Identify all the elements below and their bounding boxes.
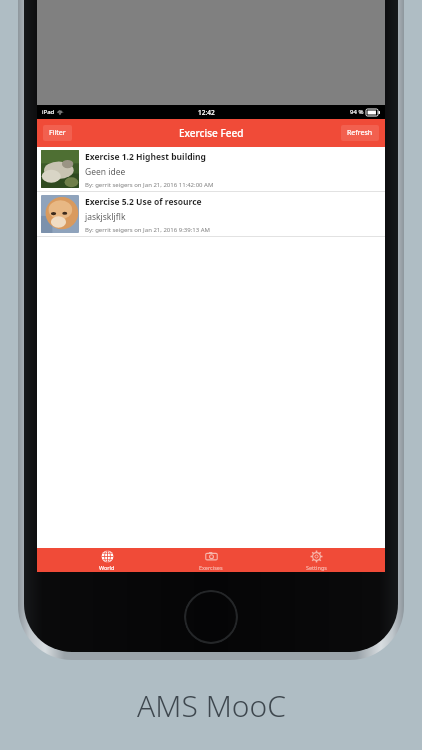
staticText: iPad	[42, 108, 55, 116]
staticText: Exercise 1.2 Highest building	[85, 151, 206, 163]
button[interactable]: Exercise 1.2 Highest building	[37, 147, 385, 191]
button[interactable]: Refresh	[341, 125, 379, 141]
staticText: 12:42	[198, 108, 215, 117]
button[interactable]: Exercise 5.2 Use of resource	[37, 192, 385, 236]
staticText: World	[99, 564, 115, 571]
staticText: Filter	[49, 128, 66, 138]
staticText: Exercises	[199, 564, 223, 571]
staticText: By: gerrit seigers on Jan 21, 2016 9:39:…	[85, 226, 210, 233]
staticText: Exercise 5.2 Use of resource	[85, 196, 202, 208]
staticText: Geen idee	[85, 166, 126, 178]
staticText: Settings	[306, 564, 327, 571]
button[interactable]: Settings	[281, 548, 351, 572]
staticText: Exercise Feed	[179, 126, 244, 140]
staticText: AMS MooC	[137, 685, 286, 726]
staticText: Refresh	[347, 128, 373, 138]
staticText: By: gerrit seigers on Jan 21, 2016 11:42…	[85, 181, 214, 188]
other: Home	[184, 590, 238, 644]
button[interactable]: Filter	[43, 125, 72, 141]
button[interactable]: World	[72, 548, 142, 572]
staticText: 94 %	[350, 108, 364, 116]
button[interactable]: Exercises	[176, 548, 246, 572]
staticText: jaskjskljflk	[85, 211, 126, 223]
